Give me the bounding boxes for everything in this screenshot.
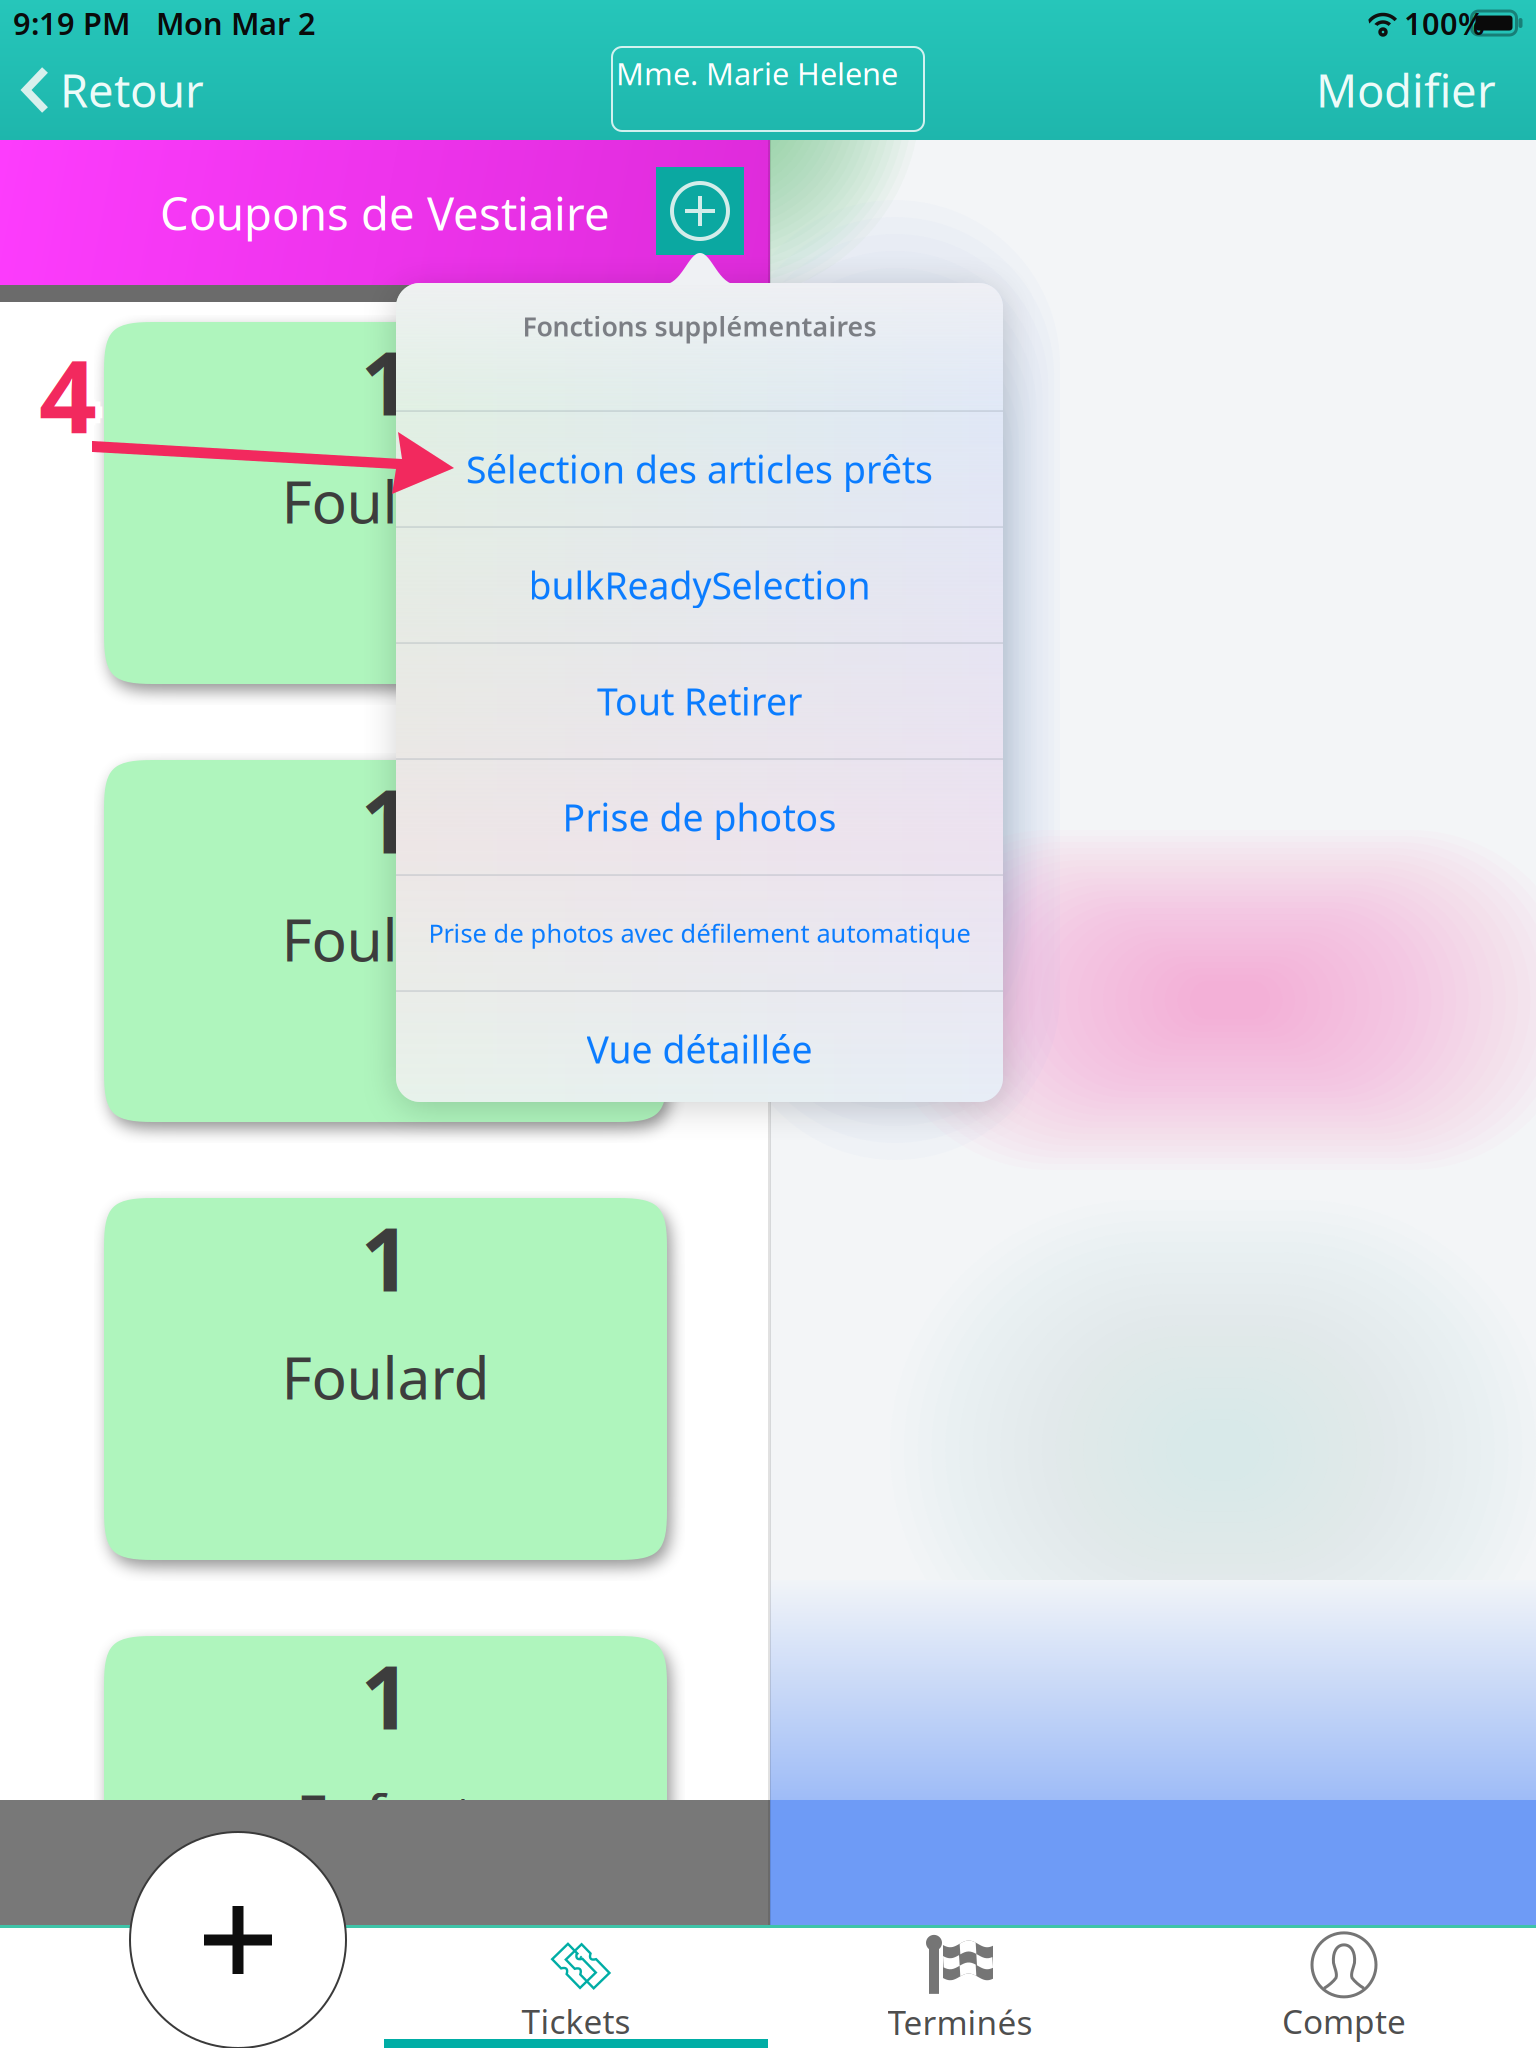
button[interactable]: 1	[104, 1636, 667, 1998]
staticText: 1	[360, 761, 410, 878]
button[interactable]: Retour	[20, 62, 250, 118]
button[interactable]: 1	[104, 1198, 667, 1560]
staticText: Prise de photos	[562, 792, 836, 842]
staticText: Mon Mar 2	[156, 3, 316, 43]
staticText: 100%	[1404, 3, 1485, 43]
staticText: Mme. Marie Helene	[616, 53, 898, 94]
staticText: 4	[34, 322, 92, 456]
staticText: Fonctions supplémentaires	[522, 308, 876, 344]
staticText: Modifier	[1316, 60, 1496, 120]
staticText: 1	[360, 1637, 410, 1754]
staticText: 4	[32, 327, 90, 461]
staticText: Coupons de Vestiaire	[160, 183, 610, 243]
button[interactable]: Modifier	[1290, 62, 1536, 118]
staticText: Retour	[60, 60, 204, 120]
staticText: Sélection des articles prêts	[466, 444, 933, 494]
staticText: 4	[39, 327, 97, 461]
staticText: Prise de photos avec défilement automati…	[428, 916, 970, 950]
staticText: bulkReadySelection	[528, 560, 870, 610]
staticText: 1	[360, 1199, 410, 1316]
button[interactable]: 1	[104, 322, 667, 684]
button[interactable]: More functions	[656, 167, 744, 255]
staticText: Terminés	[887, 2000, 1032, 2044]
button[interactable]: Compte	[1152, 1928, 1536, 2048]
button[interactable]: Prise de photos	[396, 759, 1003, 874]
staticText: 4	[34, 332, 92, 466]
button[interactable]: Vue détaillée	[396, 991, 1003, 1106]
button[interactable]: Tickets	[384, 1928, 768, 2048]
staticText: Vue détaillée	[586, 1024, 812, 1074]
button[interactable]: Prise de photos avec défilement automati…	[396, 875, 1003, 990]
staticText: Foulard	[281, 462, 489, 540]
staticText: Tickets	[521, 1999, 630, 2043]
staticText: 4	[44, 322, 102, 456]
staticText: Enfant	[296, 1776, 475, 1854]
staticText: 4	[39, 320, 97, 454]
staticText: Foulard	[281, 900, 489, 978]
button[interactable]: Tout Retirer	[396, 643, 1003, 758]
staticText: Tout Retirer	[597, 676, 802, 726]
staticText: 4	[39, 334, 97, 468]
staticText: 4	[46, 327, 104, 461]
button[interactable]: Add	[130, 1832, 346, 2048]
staticText: 9:19 PM	[13, 3, 130, 43]
button[interactable]: Terminés	[768, 1928, 1152, 2048]
button[interactable]: 1	[104, 760, 667, 1122]
staticText: Foulard	[281, 1338, 489, 1416]
button[interactable]: Sélection des articles prêts	[396, 411, 1003, 526]
staticText: 1	[360, 323, 410, 440]
staticText: Compte	[1282, 1999, 1406, 2043]
staticText: 4	[44, 332, 102, 466]
button[interactable]: bulkReadySelection	[396, 527, 1003, 642]
